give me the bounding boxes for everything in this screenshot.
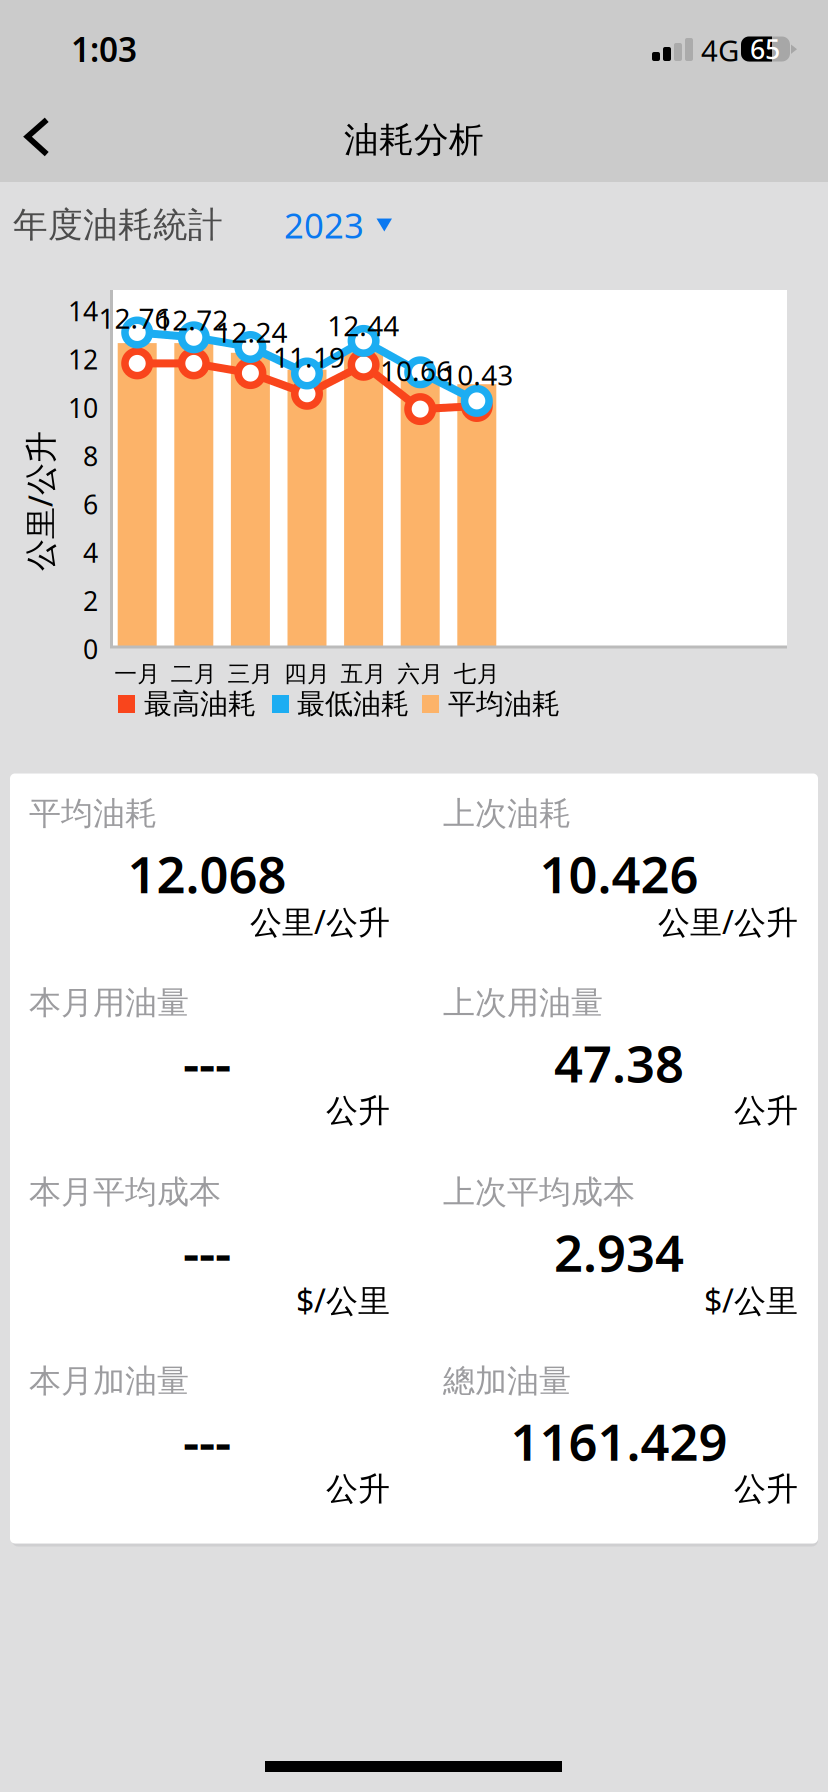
staticText: 2.934 [554,1218,684,1286]
staticText: 公里/公升 [0,480,110,522]
staticText: $/公里 [704,1279,798,1321]
staticText: 公升 [326,1091,390,1130]
staticText: 12.44 [327,307,399,344]
staticText: 上次油耗 [443,794,571,833]
staticText: 10 [68,390,98,425]
staticText: 三月 [227,660,273,688]
staticText: 七月 [454,660,500,688]
staticText: 本月用油量 [29,983,189,1022]
staticText: 六月 [397,660,443,688]
staticText: --- [183,1218,231,1286]
staticText: 本月加油量 [29,1361,189,1401]
staticText: 二月 [171,660,217,688]
staticText: 公升 [326,1469,390,1509]
staticText: 四月 [284,660,330,688]
staticText: 公里/公升 [658,900,798,943]
staticText: 1:03 [71,27,137,71]
staticText: 最高油耗 [144,687,256,721]
staticText: 2 [83,583,98,618]
staticText: 最低油耗 [297,687,409,721]
staticText: --- [183,1408,231,1475]
staticText: 12 [68,342,98,377]
staticText: 年度油耗統計 [13,204,223,246]
staticText: 公里/公升 [250,900,390,943]
staticText: 本月平均成本 [29,1172,221,1212]
staticText: 總加油量 [443,1361,571,1401]
staticText: 12.24 [215,313,287,350]
staticText: 6 [83,486,98,522]
staticText: --- [183,1029,231,1096]
staticText: 上次平均成本 [443,1172,635,1212]
staticText: 4 [83,535,98,570]
staticText: 平均油耗 [448,687,560,721]
staticText: 10.66 [380,352,452,389]
staticText: 1161.429 [510,1408,727,1475]
staticText: $/公里 [296,1279,390,1321]
staticText: 14 [68,293,98,329]
staticText: 10.426 [539,840,698,907]
staticText: 11.19 [273,338,345,376]
staticText: 0 [83,631,98,667]
staticText: 65 [750,31,780,67]
staticText: 一月 [114,660,160,688]
staticText: 油耗分析 [344,119,484,161]
staticText: 8 [83,438,98,473]
staticText: 2023 [284,202,364,248]
staticText: 公升 [734,1091,798,1130]
staticText: 公升 [734,1469,798,1509]
staticText: 12.72 [156,301,228,338]
staticText: 10.43 [441,356,513,393]
staticText: 12.76 [99,299,171,337]
staticText: 47.38 [554,1029,684,1096]
button[interactable]: Back [0,90,96,184]
staticText: 平均油耗 [29,794,157,833]
staticText: 五月 [341,660,387,688]
staticText: 上次用油量 [443,983,603,1022]
staticText: 4G [701,30,739,69]
button[interactable]: 2023 [0,0,828,1792]
staticText: 12.068 [127,840,286,907]
